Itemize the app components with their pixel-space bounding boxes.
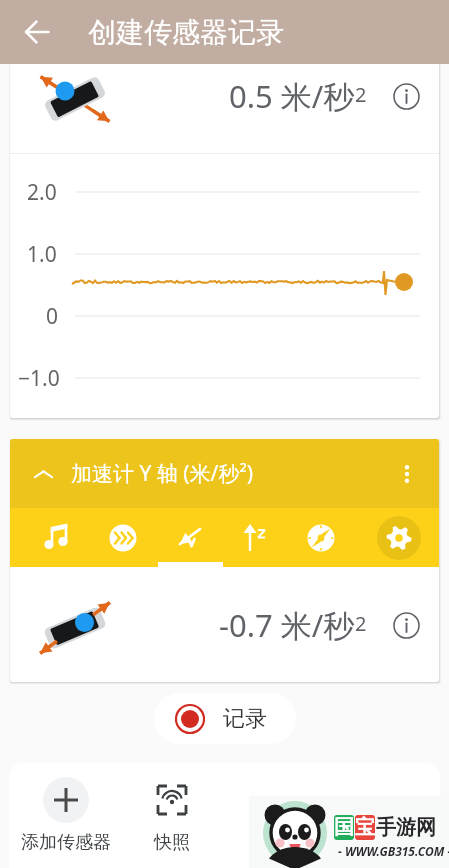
button[interactable]: Fast forward [99, 514, 147, 562]
button[interactable]: Collapse [10, 439, 439, 508]
staticText: -0.7 米/秒 [219, 604, 355, 646]
button[interactable]: Acceleration [165, 514, 213, 562]
button[interactable]: Info [387, 606, 425, 644]
staticText: 国 [334, 815, 354, 840]
staticText: 0.5 米/秒 [229, 75, 355, 117]
button[interactable]: 快照 [119, 777, 225, 854]
staticText: 添加传感器 [21, 831, 111, 854]
staticText: 手游网 [376, 815, 436, 840]
button[interactable]: More options [385, 452, 429, 496]
button[interactable]: Audio [33, 514, 81, 562]
button[interactable]: 添加传感器 [13, 777, 119, 854]
button[interactable]: Back [17, 12, 57, 52]
button[interactable]: Z axis [231, 514, 279, 562]
staticText: 2.0 [27, 178, 57, 207]
button[interactable]: Collapse [26, 457, 60, 491]
button[interactable]: -0.7 米/秒 [10, 567, 439, 682]
staticText: - WWW.GB315.COM - [338, 843, 449, 859]
staticText: 宝 [355, 815, 375, 840]
button[interactable]: 记录 [154, 693, 296, 744]
staticText: 1.0 [27, 240, 57, 269]
button[interactable]: Settings [375, 514, 423, 562]
staticText: 加速计 Y 轴 (米/秒²) [71, 459, 254, 488]
staticText: −1.0 [18, 364, 60, 393]
staticText: 0 [46, 302, 59, 331]
button[interactable]: Compass [297, 514, 345, 562]
button[interactable]: Info [387, 77, 425, 115]
staticText: 记录 [223, 705, 267, 733]
staticText: 快照 [154, 831, 190, 854]
staticText: 2 [355, 81, 367, 108]
staticText: 2 [355, 610, 367, 637]
button[interactable]: 0.5 米/秒 [10, 38, 439, 153]
staticText: 创建传感器记录 [88, 15, 284, 50]
